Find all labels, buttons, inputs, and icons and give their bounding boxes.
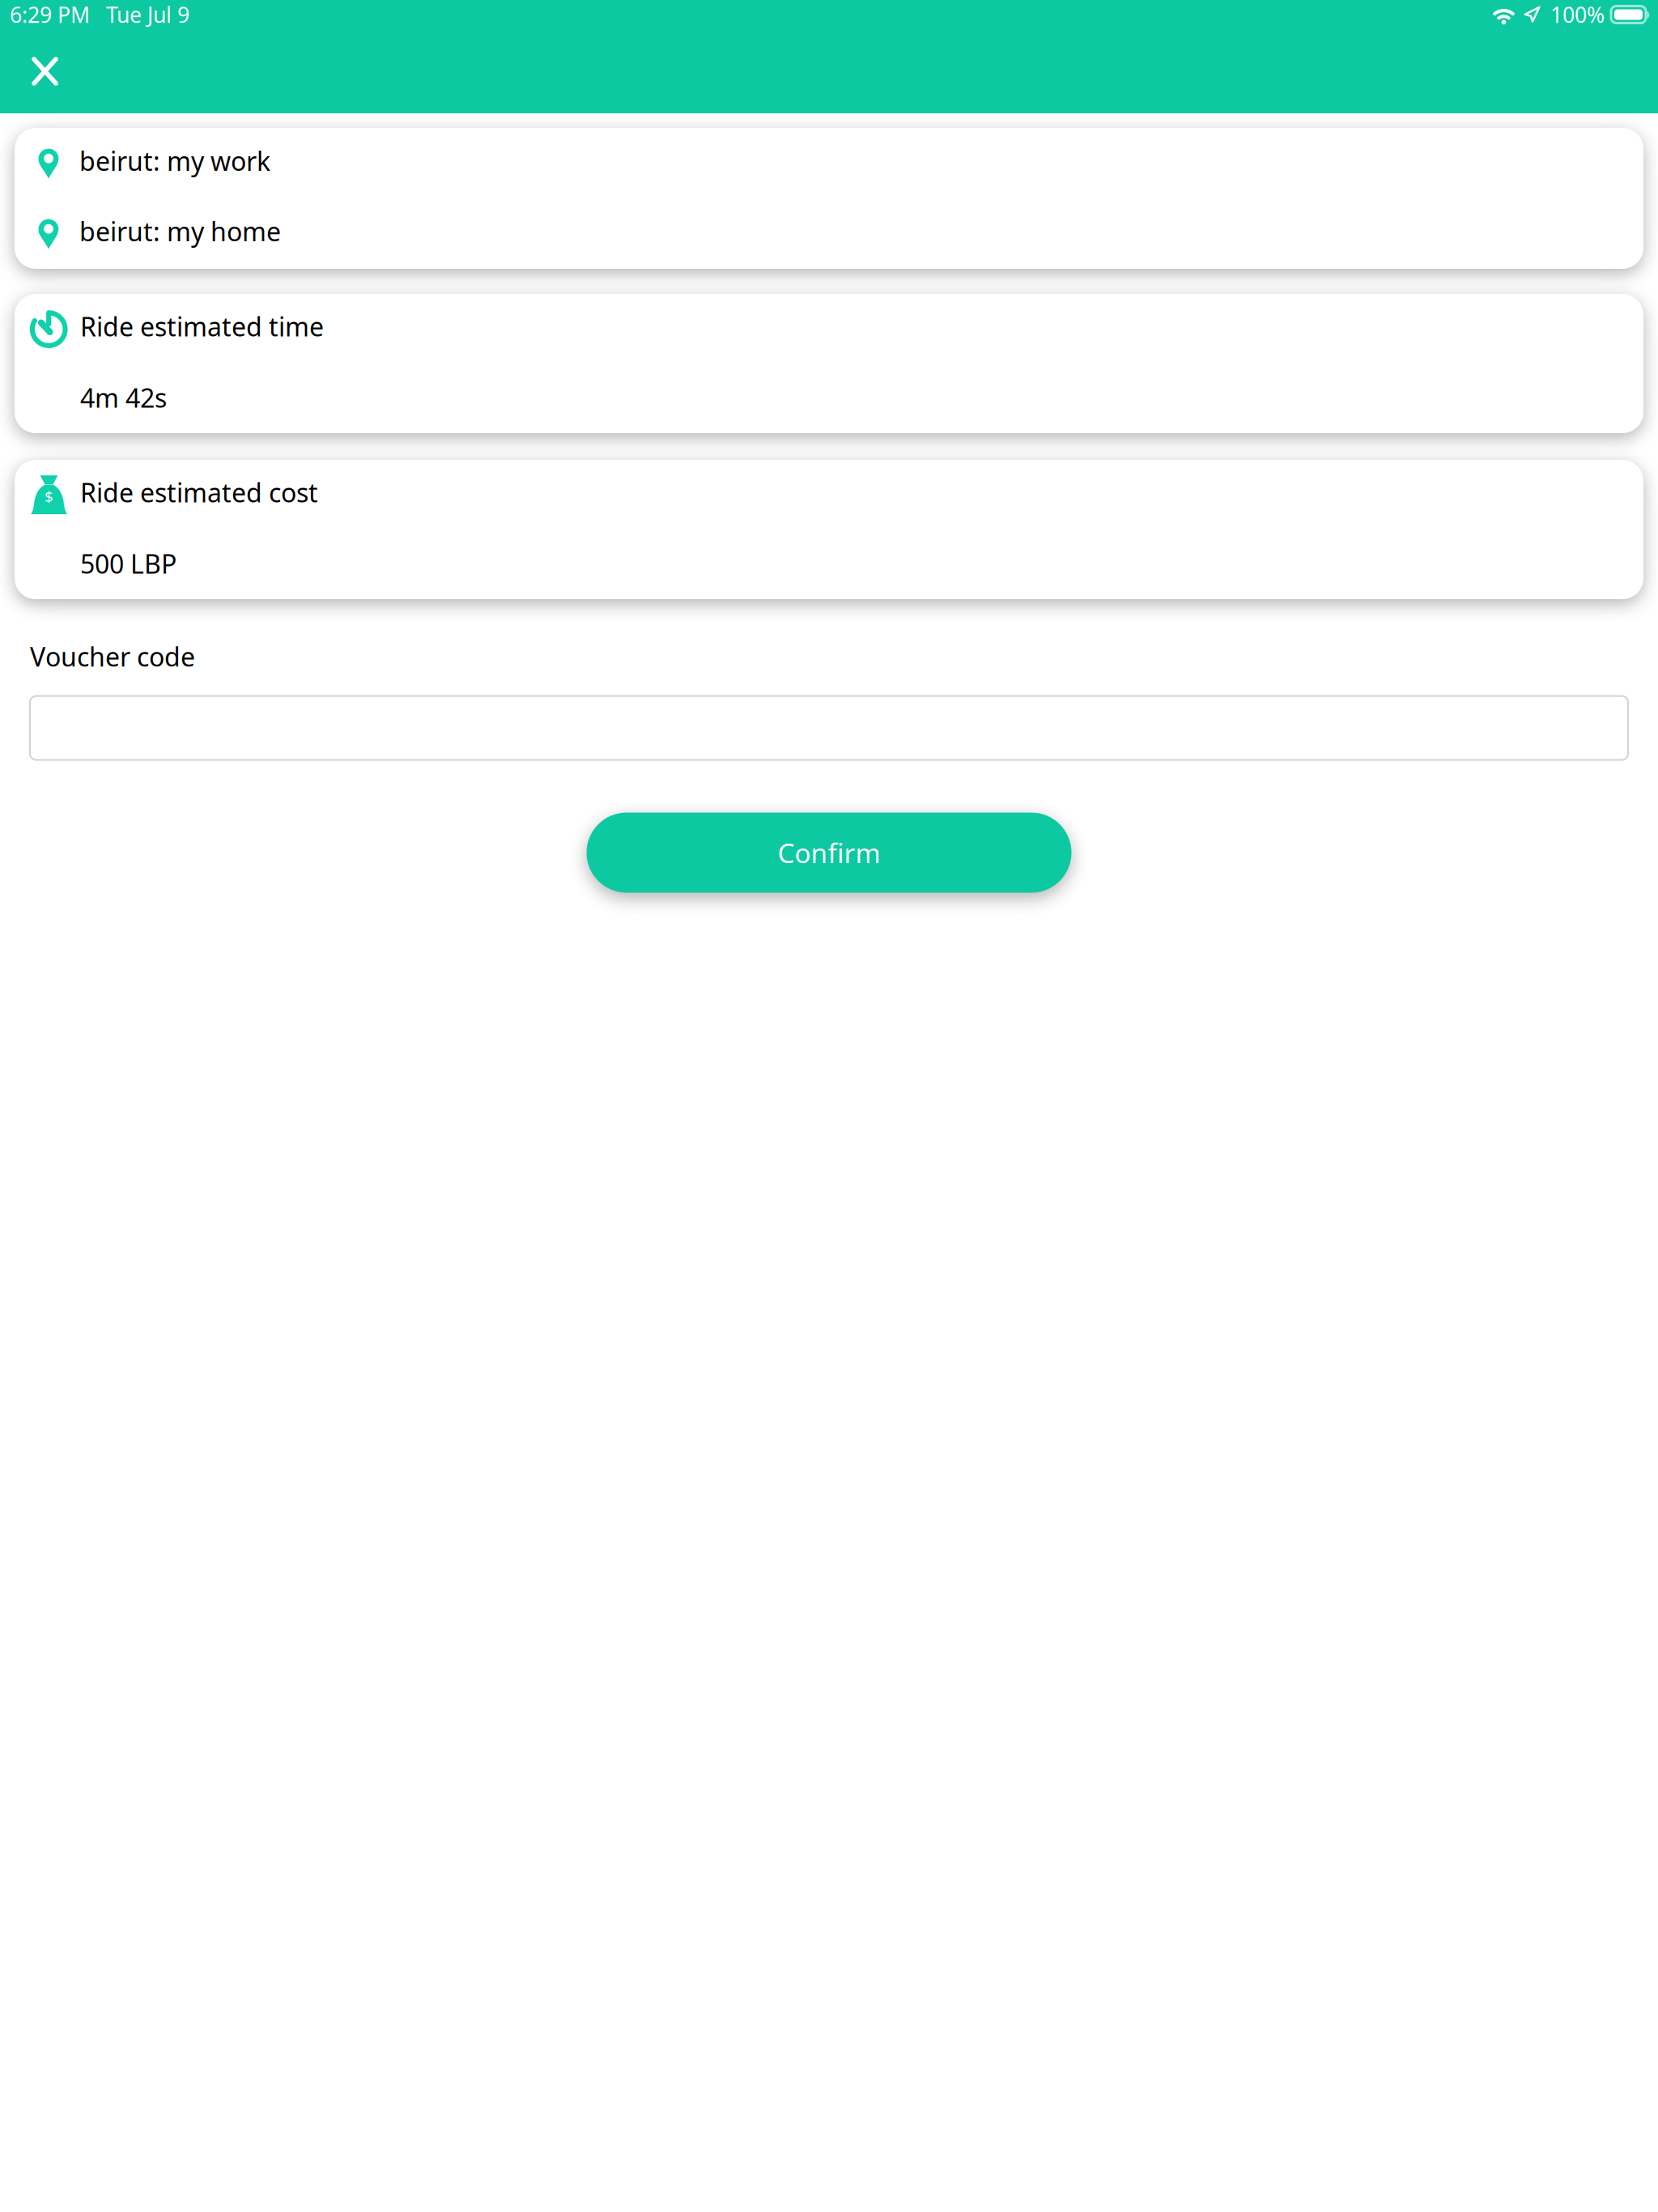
staticText: Confirm [778,834,880,871]
button[interactable]: beirut: my work [15,128,1643,198]
button[interactable]: Confirm [587,813,1071,893]
button[interactable]: Voucher code text field [15,696,1643,760]
staticText: Ride estimated cost [80,475,318,510]
staticText: 4m 42s [80,380,167,415]
button[interactable]: beirut: my home [15,198,1643,269]
staticText: Tue Jul 9 [106,0,189,29]
staticText: 500 LBP [80,546,176,581]
staticText: 6:29 PM [10,0,90,29]
staticText: beirut: my work [79,143,270,178]
staticText: $ [45,486,53,507]
staticText: 100% [1550,0,1605,29]
staticText: Ride estimated time [80,309,324,344]
staticText: Voucher code [30,639,195,674]
button[interactable]: Close [0,29,79,89]
staticText: beirut: my home [79,214,281,249]
